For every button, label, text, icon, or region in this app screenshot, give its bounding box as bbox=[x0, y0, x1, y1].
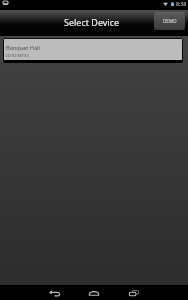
staticText: DEMO bbox=[163, 18, 177, 24]
staticText: ID:02:MTX3 bbox=[6, 52, 30, 58]
staticText: 8:38 bbox=[176, 0, 187, 7]
staticText: Select Device bbox=[64, 16, 120, 28]
button[interactable]: Banquet Hall bbox=[4, 39, 182, 60]
staticText: Banquet Hall bbox=[6, 44, 40, 52]
button[interactable]: Home bbox=[73, 285, 115, 300]
button[interactable]: DEMO bbox=[154, 12, 185, 30]
button[interactable]: Back bbox=[33, 285, 75, 300]
button[interactable]: Recent apps bbox=[113, 285, 155, 300]
